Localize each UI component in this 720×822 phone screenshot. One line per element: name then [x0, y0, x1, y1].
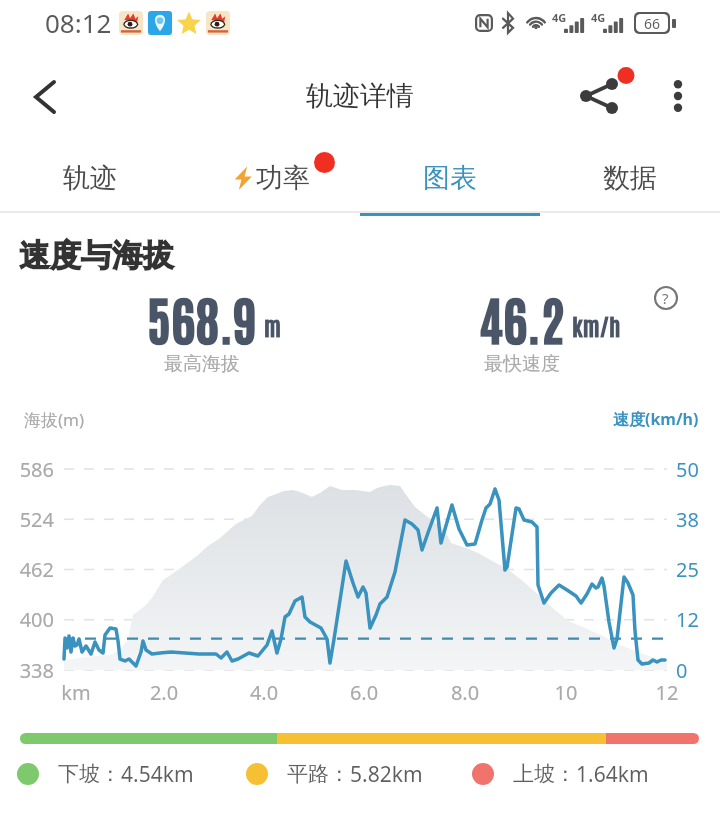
staticText: km/h [572, 310, 621, 340]
staticText: 12 [676, 606, 720, 633]
staticText: 5.82km [350, 760, 423, 788]
staticText: 最高海拔 [52, 352, 352, 376]
staticText: 海拔(m) [24, 408, 85, 431]
staticText: 12 [637, 679, 697, 706]
staticText: 轨迹 [63, 161, 117, 195]
staticText: 4.0 [234, 679, 294, 706]
button[interactable]: Share [564, 56, 630, 122]
staticText: 速度(km/h) [613, 408, 699, 430]
staticText: m [264, 310, 281, 340]
staticText: 50 [676, 456, 720, 483]
button[interactable]: 平路： [246, 760, 423, 788]
staticText: 数据 [603, 161, 657, 195]
staticText: 10 [536, 679, 596, 706]
staticText: 46.2 [479, 284, 565, 351]
staticText: 25 [676, 556, 720, 583]
button[interactable]: 上坡： [472, 760, 649, 788]
button[interactable]: 轨迹 [0, 140, 180, 216]
staticText: 轨迹详情 [306, 79, 414, 113]
staticText: 4G [591, 10, 606, 25]
staticText: 平路： [287, 761, 350, 787]
staticText: 524 [0, 506, 54, 533]
staticText: 下坡： [58, 761, 121, 787]
button[interactable]: Help [646, 278, 685, 317]
staticText: ? [662, 288, 669, 308]
staticText: 4.54km [121, 760, 194, 788]
button[interactable]: 下坡： [17, 760, 194, 788]
staticText: 8.0 [435, 679, 495, 706]
staticText: 462 [0, 556, 54, 583]
staticText: 568.9 [147, 284, 258, 351]
staticText: 6.0 [334, 679, 394, 706]
button[interactable]: 功率 [180, 140, 360, 216]
staticText: 1.64km [576, 760, 649, 788]
staticText: 上坡： [513, 761, 576, 787]
button[interactable]: 数据 [540, 140, 720, 216]
staticText: 功率 [256, 161, 310, 195]
button[interactable]: More options [646, 64, 710, 128]
staticText: 0 [676, 657, 720, 684]
staticText: 最快速度 [372, 352, 672, 376]
staticText: 38 [676, 506, 720, 533]
staticText: 08:12 [45, 5, 112, 40]
staticText: 586 [0, 456, 54, 483]
staticText: 4G [552, 10, 567, 25]
staticText: 338 [0, 657, 54, 684]
staticText: km [46, 679, 106, 706]
staticText: 图表 [423, 161, 477, 195]
staticText: 66 [644, 14, 661, 32]
staticText: 速度与海拔 [19, 236, 174, 275]
staticText: 400 [0, 606, 54, 633]
button[interactable]: 图表 [360, 140, 540, 216]
button[interactable]: Back [10, 62, 80, 132]
staticText: 2.0 [134, 679, 194, 706]
